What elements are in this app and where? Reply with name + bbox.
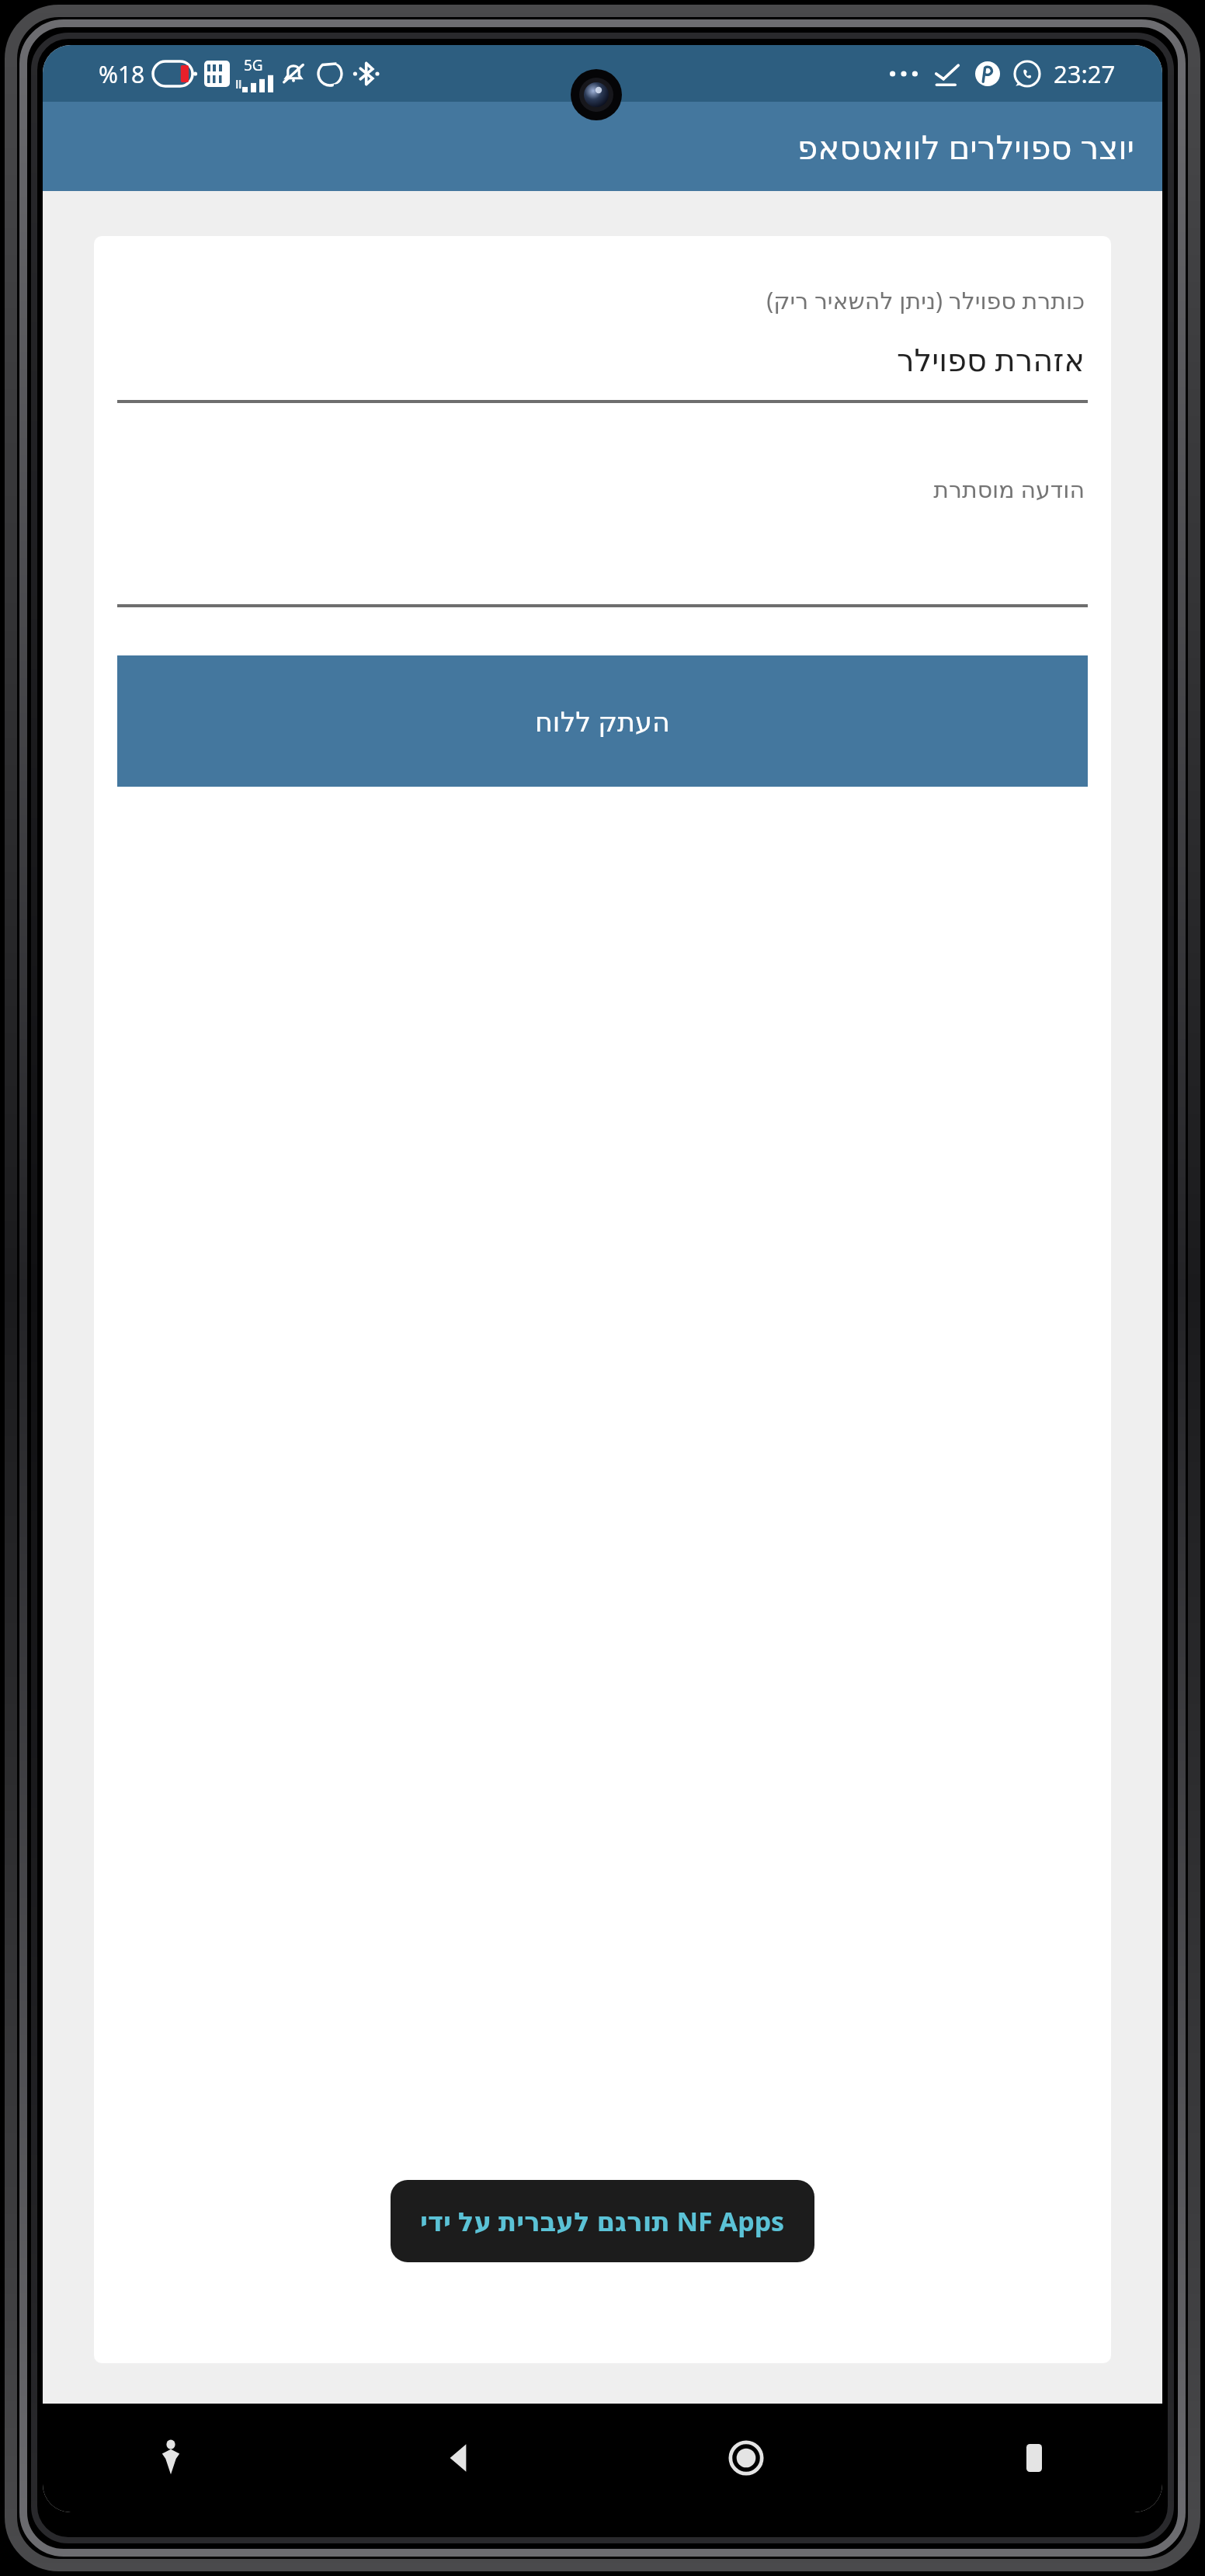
staticText: 23:27: [1054, 57, 1116, 90]
staticText: %18: [99, 58, 145, 90]
staticText: הודעה מוסתרת: [933, 473, 1085, 505]
button[interactable]: Recents: [991, 2415, 1077, 2501]
staticText: תורגם לעברית על ידי NF Apps: [420, 2203, 785, 2239]
staticText: יוצר ספוילרים לוואטסאפ: [797, 124, 1134, 169]
staticText: העתק ללוח: [535, 703, 670, 740]
button[interactable]: Home: [703, 2415, 789, 2501]
staticText: כותרת ספוילר (ניתן להשאיר ריק): [766, 284, 1085, 316]
button[interactable]: Back: [415, 2415, 501, 2501]
button[interactable]: תורגם לעברית על ידי NF Apps: [391, 2180, 814, 2262]
staticText: 5G: [244, 55, 263, 75]
staticText: אזהרת ספוילר: [896, 338, 1085, 380]
button[interactable]: העתק ללוח: [117, 655, 1088, 787]
button[interactable]: אזהרת ספוילר: [120, 338, 1085, 380]
button[interactable]: Hide keyboard: [128, 2415, 214, 2501]
